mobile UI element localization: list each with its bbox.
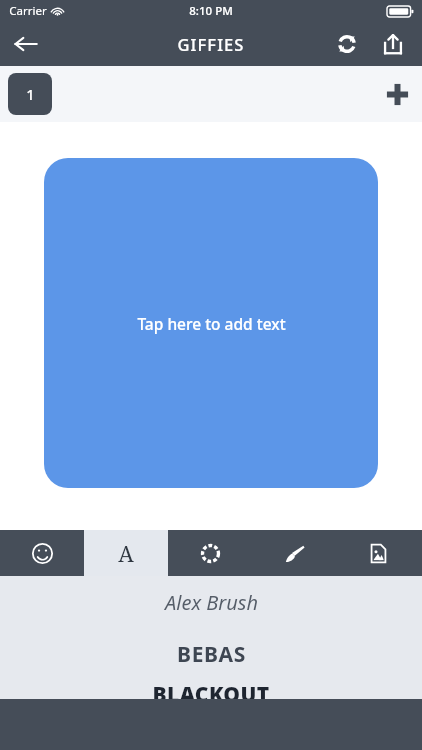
staticText: Carrier: [9, 3, 47, 19]
button[interactable]: Brush: [252, 530, 336, 576]
staticText: 8:10 PM: [189, 3, 233, 19]
button[interactable]: BEBAS: [0, 628, 422, 680]
staticText: Alex Brush: [165, 589, 258, 616]
button[interactable]: Back: [0, 22, 52, 66]
button[interactable]: BLACKOUT: [0, 680, 422, 699]
button[interactable]: Image: [336, 530, 420, 576]
button[interactable]: Shapes: [168, 530, 252, 576]
button[interactable]: Refresh: [324, 22, 370, 66]
button[interactable]: Tap here to add text: [44, 158, 378, 488]
button[interactable]: Stickers: [0, 530, 84, 576]
button[interactable]: Add page: [372, 68, 422, 120]
staticText: GIFFIES: [177, 33, 245, 55]
staticText: Tap here to add text: [137, 313, 286, 334]
staticText: BLACKOUT: [152, 680, 270, 699]
staticText: 1: [26, 84, 35, 104]
button[interactable]: Text: [84, 530, 168, 576]
button[interactable]: 1: [8, 73, 52, 115]
staticText: BEBAS: [177, 640, 246, 669]
button[interactable]: Alex Brush: [0, 576, 422, 628]
staticText: A: [118, 538, 134, 568]
button[interactable]: Share: [370, 22, 416, 66]
